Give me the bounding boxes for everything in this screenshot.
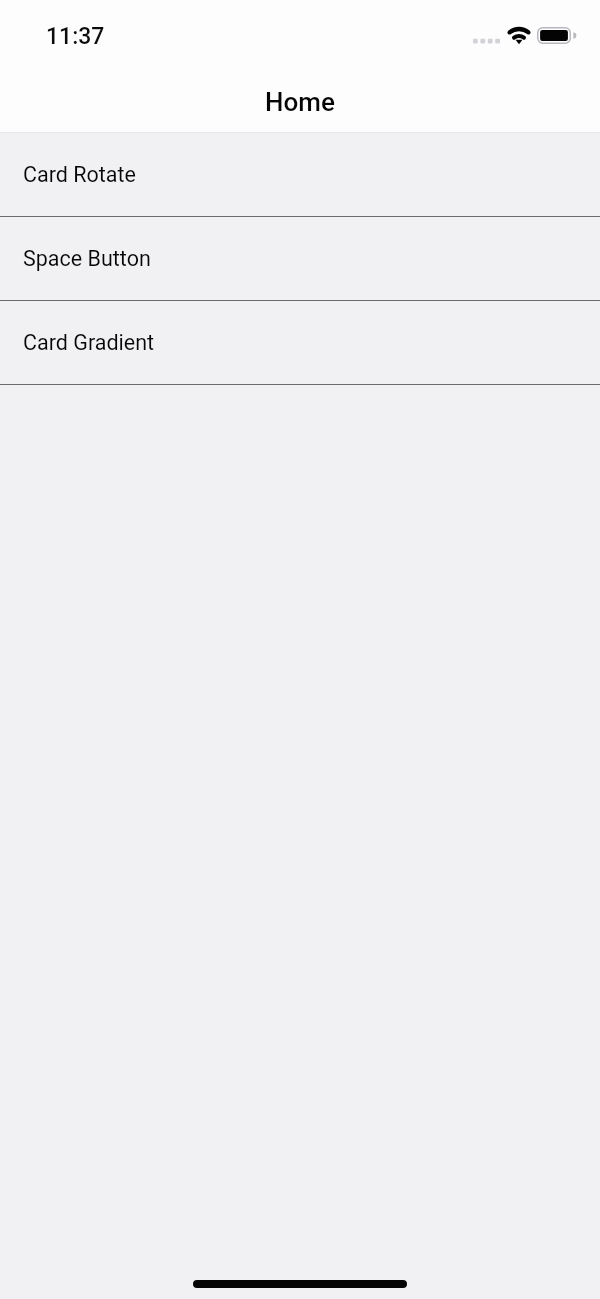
staticText: Card Gradient — [23, 330, 155, 355]
button[interactable]: Card Rotate — [0, 133, 600, 217]
staticText: Space Button — [23, 246, 151, 271]
button[interactable]: Space Button — [0, 217, 600, 301]
staticText: 11:37 — [46, 23, 105, 50]
other: Cellular signal, Wi-Fi and battery statu… — [473, 25, 578, 44]
staticText: Home — [265, 87, 335, 117]
button[interactable]: Card Gradient — [0, 301, 600, 385]
staticText: Card Rotate — [23, 162, 136, 187]
